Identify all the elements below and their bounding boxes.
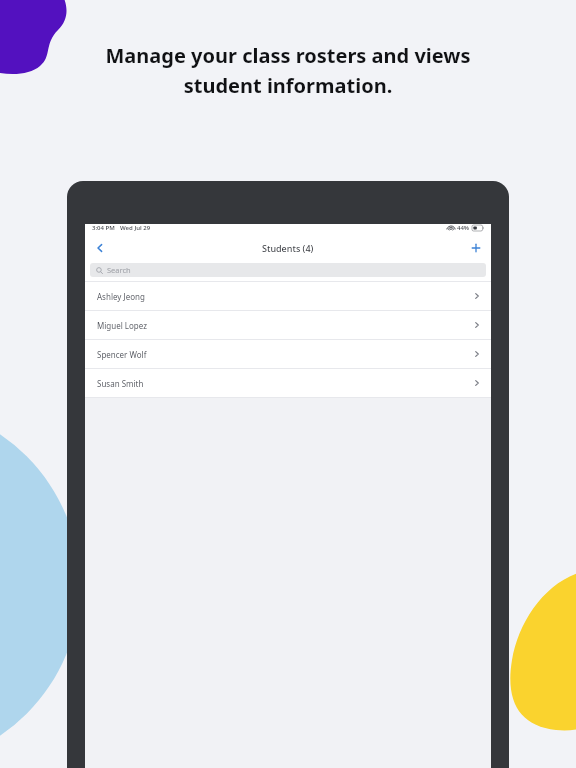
staticText: Students (4) xyxy=(262,242,314,254)
staticText: Spencer Wolf xyxy=(97,349,147,360)
staticText: Search xyxy=(107,265,131,275)
staticText: Susan Smith xyxy=(97,378,144,389)
staticText: Ashley Jeong xyxy=(97,291,145,302)
button[interactable]: Susan Smith xyxy=(85,369,491,397)
staticText: Manage your class rosters and views stud… xyxy=(40,42,536,99)
button[interactable]: Back xyxy=(89,237,111,259)
button[interactable]: Miguel Lopez xyxy=(85,311,491,339)
staticText: 3:04 PM xyxy=(92,224,115,232)
staticText: 44% xyxy=(457,224,470,232)
button[interactable]: Search xyxy=(90,263,486,277)
button[interactable]: Add student xyxy=(465,237,487,259)
button[interactable]: Spencer Wolf xyxy=(85,340,491,368)
staticText: Miguel Lopez xyxy=(97,320,147,331)
button[interactable]: Ashley Jeong xyxy=(85,282,491,310)
staticText: Wed Jul 29 xyxy=(120,224,151,232)
